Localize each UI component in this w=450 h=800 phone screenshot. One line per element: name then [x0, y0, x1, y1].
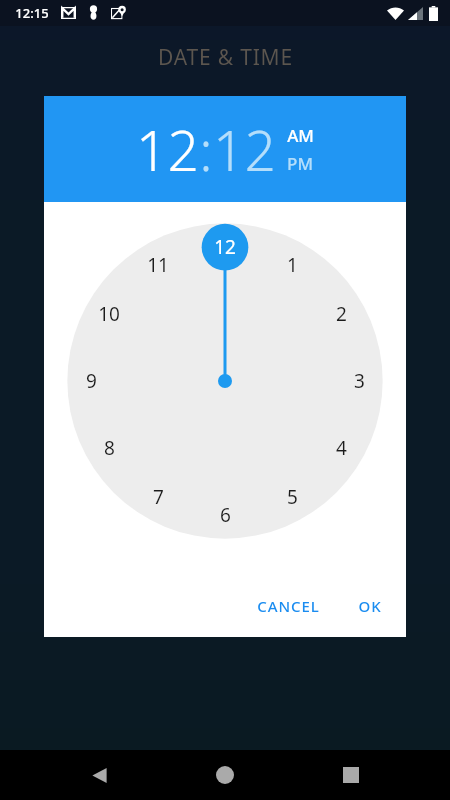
- button[interactable]: 2: [323, 296, 359, 332]
- staticText: 10: [98, 301, 120, 327]
- staticText: 7: [153, 484, 164, 510]
- button[interactable]: Clock face, 12 o'clock selected: [44, 202, 406, 575]
- button[interactable]: 12: [207, 229, 243, 265]
- staticText: 6: [220, 502, 231, 528]
- button[interactable]: 1: [274, 247, 310, 283]
- staticText: 5: [287, 484, 298, 510]
- staticText: 8: [104, 435, 115, 461]
- staticText: 3: [354, 368, 365, 394]
- button[interactable]: Recent apps: [332, 756, 370, 794]
- staticText: 1: [287, 252, 298, 278]
- staticText: 11: [147, 252, 169, 278]
- staticText: 12: [214, 234, 236, 260]
- button[interactable]: AM: [287, 124, 314, 147]
- staticText: AM: [287, 124, 314, 147]
- staticText: 12: [213, 112, 276, 187]
- staticText: DATE & TIME: [158, 43, 293, 72]
- staticText: OK: [358, 596, 382, 616]
- button[interactable]: 9: [73, 363, 109, 399]
- button[interactable]: 3: [341, 363, 377, 399]
- button[interactable]: 12: [213, 112, 276, 187]
- button[interactable]: 5: [274, 479, 310, 515]
- staticText: 9: [86, 368, 97, 394]
- button[interactable]: 4: [323, 430, 359, 466]
- staticText: 2: [336, 301, 347, 327]
- button[interactable]: 6: [207, 497, 243, 533]
- button[interactable]: 8: [91, 430, 127, 466]
- button[interactable]: CANCEL: [245, 588, 332, 624]
- staticText: PM: [287, 152, 313, 175]
- staticText: 12:15: [15, 4, 49, 22]
- button[interactable]: 10: [91, 296, 127, 332]
- button[interactable]: 7: [140, 479, 176, 515]
- button[interactable]: OK: [346, 588, 394, 624]
- button[interactable]: Back: [80, 756, 118, 794]
- button[interactable]: PM: [287, 152, 313, 175]
- button[interactable]: 11: [140, 247, 176, 283]
- staticText: 12: [136, 112, 199, 187]
- staticText: :: [199, 112, 213, 187]
- staticText: CANCEL: [257, 596, 320, 616]
- staticText: 4: [336, 435, 347, 461]
- button[interactable]: 12: [136, 112, 199, 187]
- button[interactable]: Home: [206, 756, 244, 794]
